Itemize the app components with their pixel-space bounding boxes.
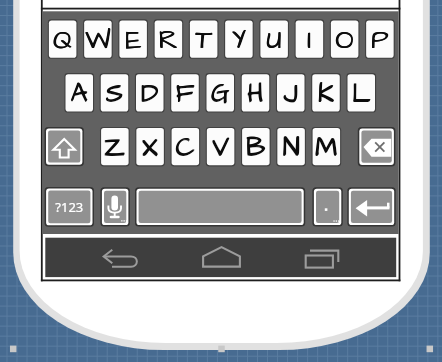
button[interactable]: A (64, 73, 93, 112)
button[interactable]: Recent apps (301, 238, 341, 276)
button[interactable]: P (365, 19, 394, 58)
button[interactable]: N (276, 126, 305, 165)
button[interactable]: Space (135, 187, 305, 226)
button[interactable]: U (259, 19, 288, 58)
button[interactable]: Q (47, 19, 76, 58)
button[interactable]: C (170, 126, 199, 165)
button[interactable]: S (99, 73, 128, 112)
button[interactable]: Y (224, 19, 253, 58)
button[interactable]: K (311, 73, 340, 112)
button[interactable]: O (329, 19, 358, 58)
button[interactable]: R (153, 19, 182, 58)
button[interactable]: Voice input (100, 187, 129, 226)
button[interactable]: I (294, 19, 323, 58)
button[interactable]: B (241, 126, 270, 165)
button[interactable]: E (118, 19, 147, 58)
button[interactable]: Home (201, 238, 241, 276)
button[interactable]: L (346, 73, 375, 112)
button[interactable]: Enter (347, 187, 395, 226)
button[interactable]: Symbols (44, 187, 93, 226)
button[interactable]: W (83, 19, 112, 58)
button[interactable]: X (135, 126, 164, 165)
button[interactable]: M (311, 126, 340, 165)
button[interactable]: Period (312, 187, 342, 226)
button[interactable]: V (205, 126, 234, 165)
button[interactable]: J (275, 73, 304, 112)
button[interactable]: Shift (44, 126, 83, 165)
button[interactable]: Z (100, 126, 129, 165)
button[interactable]: F (170, 73, 199, 112)
button[interactable]: Backspace (357, 127, 394, 166)
button[interactable]: G (205, 73, 234, 112)
button[interactable]: H (240, 73, 269, 112)
button[interactable]: Back (100, 238, 140, 276)
button[interactable]: T (188, 19, 217, 58)
button[interactable]: D (134, 73, 163, 112)
